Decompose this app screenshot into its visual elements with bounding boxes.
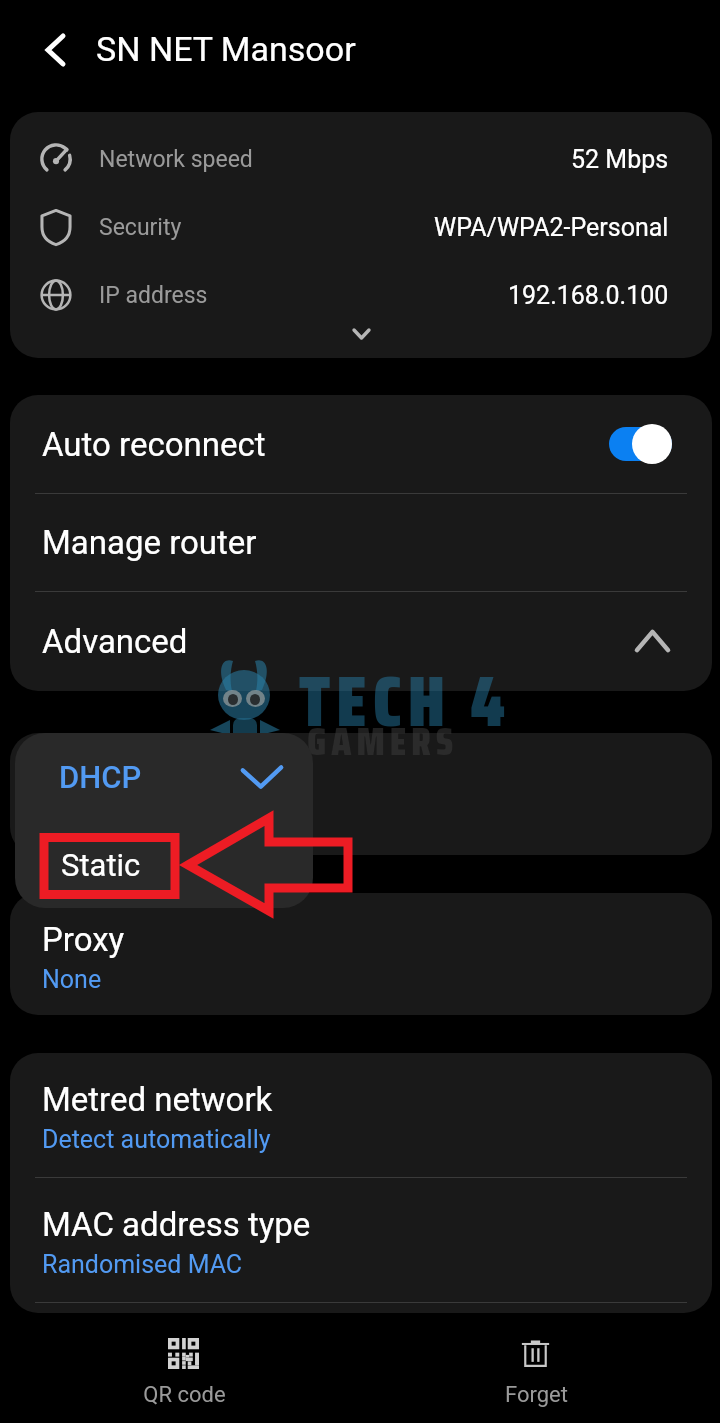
button[interactable]: Metred network [10,1053,712,1177]
staticText: Metred network [42,1080,273,1119]
button[interactable]: MAC address type [10,1178,712,1302]
staticText: Network speed [99,146,253,173]
button[interactable]: DHCP [15,733,313,821]
staticText: WPA/WPA2-Personal [434,213,669,242]
staticText: Forget [505,1382,568,1408]
button[interactable]: Manage router [10,494,712,591]
staticText: Proxy [42,920,125,959]
button[interactable]: Static [15,821,313,908]
staticText: 52 Mbps [571,145,669,174]
staticText: 192.168.0.100 [508,281,669,310]
button[interactable]: Advanced [10,592,712,690]
button[interactable]: Show more [10,329,712,358]
staticText: Security [99,214,182,241]
staticText: Detect automatically [42,1125,271,1154]
staticText: Auto reconnect [42,425,266,464]
button[interactable]: Auto reconnect [10,395,712,493]
staticText: Advanced [42,622,188,661]
staticText: Static [61,847,141,883]
staticText: TECH 4 [299,644,511,757]
staticText: SN NET Mansoor [96,29,356,69]
staticText: None [42,965,102,994]
button[interactable]: Proxy [10,893,712,1015]
button[interactable]: QR code [84,1313,284,1408]
button[interactable]: Forget [436,1313,636,1408]
staticText: MAC address type [42,1205,311,1244]
button[interactable]: Auto reconnect [609,423,672,465]
staticText: DHCP [59,759,142,795]
button[interactable]: Back [7,2,103,98]
staticText: QR code [143,1382,226,1408]
staticText: IP address [99,282,208,309]
staticText: Manage router [42,523,257,562]
staticText: GAMERS [307,711,459,772]
staticText: Randomised MAC [42,1250,243,1279]
